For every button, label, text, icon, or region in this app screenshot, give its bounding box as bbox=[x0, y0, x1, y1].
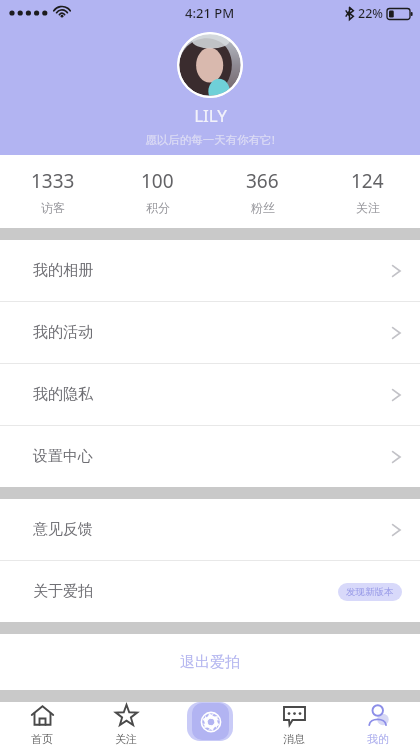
button[interactable]: 我的隐私 bbox=[0, 364, 420, 425]
button[interactable]: 100 bbox=[105, 155, 210, 228]
button[interactable]: Camera bbox=[187, 702, 233, 741]
staticText: 22% bbox=[358, 5, 383, 22]
button[interactable]: Profile photo bbox=[177, 32, 243, 98]
button[interactable]: 124 bbox=[315, 155, 420, 228]
button[interactable]: 意见反馈 bbox=[0, 499, 420, 560]
button[interactable]: 366 bbox=[210, 155, 315, 228]
button[interactable]: 1333 bbox=[0, 155, 105, 228]
staticText: 124 bbox=[351, 168, 384, 194]
staticText: 关注 bbox=[356, 200, 380, 215]
button[interactable]: 退出爱拍 bbox=[0, 634, 420, 690]
button[interactable]: 首页 bbox=[0, 702, 84, 747]
staticText: 我的活动 bbox=[33, 323, 93, 342]
staticText: 消息 bbox=[283, 732, 305, 746]
staticText: 积分 bbox=[146, 200, 170, 215]
staticText: LILY bbox=[194, 104, 227, 127]
staticText: 关注 bbox=[115, 732, 137, 746]
button[interactable]: 消息 bbox=[252, 702, 336, 747]
button[interactable]: 关注 bbox=[84, 702, 168, 747]
staticText: 愿以后的每一天有你有它! bbox=[145, 132, 275, 148]
staticText: 100 bbox=[141, 168, 174, 194]
staticText: 首页 bbox=[31, 732, 53, 746]
staticText: 1333 bbox=[31, 168, 75, 194]
button[interactable]: 设置中心 bbox=[0, 426, 420, 487]
staticText: 粉丝 bbox=[251, 200, 275, 215]
staticText: 访客 bbox=[41, 200, 65, 215]
staticText: 退出爱拍 bbox=[180, 653, 240, 672]
staticText: 366 bbox=[246, 168, 279, 194]
staticText: 我的隐私 bbox=[33, 385, 93, 404]
button[interactable]: 我的活动 bbox=[0, 302, 420, 363]
button[interactable]: 我的相册 bbox=[0, 240, 420, 301]
button[interactable]: 我的 bbox=[336, 702, 420, 747]
button[interactable]: 关于爱拍 bbox=[0, 561, 420, 622]
staticText: 关于爱拍 bbox=[33, 582, 93, 601]
staticText: 设置中心 bbox=[33, 447, 93, 466]
staticText: 发现新版本 bbox=[346, 586, 394, 598]
staticText: 4:21 PM bbox=[185, 4, 235, 22]
staticText: 我的 bbox=[367, 732, 389, 746]
staticText: 意见反馈 bbox=[33, 520, 93, 539]
staticText: 我的相册 bbox=[33, 261, 93, 280]
